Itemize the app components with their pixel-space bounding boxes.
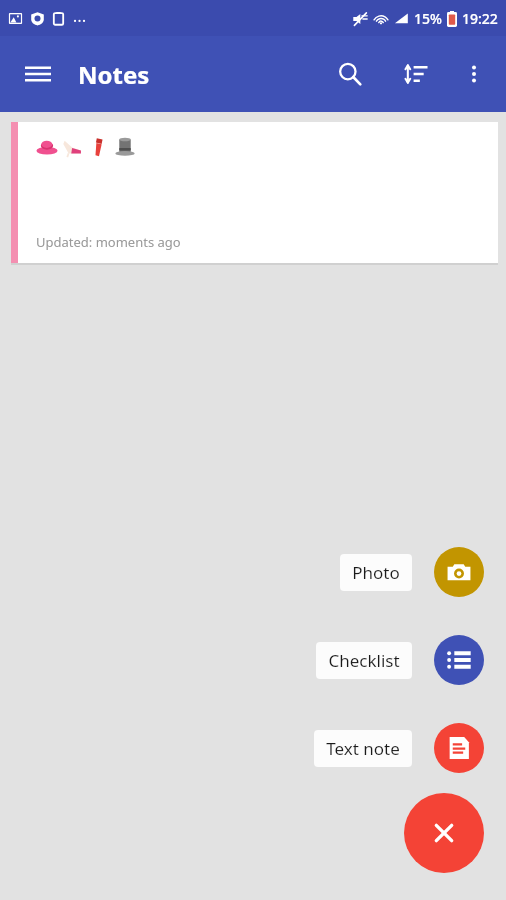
- button[interactable]: Checklist: [434, 635, 484, 685]
- button[interactable]: Text note: [434, 723, 484, 773]
- staticText: Checklist: [328, 649, 400, 672]
- button[interactable]: Sort: [392, 50, 440, 98]
- button[interactable]: Search: [326, 50, 374, 98]
- staticText: 19:22: [462, 9, 498, 28]
- button[interactable]: Text note: [314, 730, 412, 767]
- button[interactable]: Photo: [340, 554, 412, 591]
- staticText: 15%: [414, 9, 442, 28]
- staticText: Updated: moments ago: [36, 233, 181, 251]
- button[interactable]: Close menu: [404, 793, 484, 873]
- staticText: Photo: [352, 561, 400, 584]
- button[interactable]: More options: [450, 50, 498, 98]
- staticText: Text note: [326, 737, 400, 760]
- button[interactable]: Checklist: [316, 642, 412, 679]
- staticText: Notes: [78, 58, 150, 91]
- button[interactable]: Photo: [434, 547, 484, 597]
- button[interactable]: Updated: moments ago: [11, 122, 498, 263]
- button[interactable]: Open navigation drawer: [14, 50, 62, 98]
